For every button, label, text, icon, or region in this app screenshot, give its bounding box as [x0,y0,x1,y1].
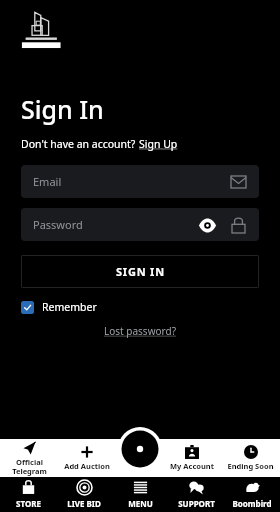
staticText: Sign Up [139,137,178,151]
staticText: SUPPORT [178,498,215,509]
button[interactable]: Official Telegram [0,439,58,477]
staticText: Lost password? [104,324,176,338]
button[interactable]: SUPPORT [168,477,224,512]
staticText: Email [33,174,62,189]
staticText: LIVE BID [67,498,101,509]
button[interactable]: Bettron Live Bid logo [21,8,67,52]
staticText: Don't have an account? [21,137,139,151]
button[interactable]: STORE [0,477,56,512]
button[interactable]: Password locked [227,214,249,236]
staticText: Official Telegram [12,457,47,476]
button[interactable]: My Account [162,439,221,477]
staticText: Remember [42,300,97,314]
staticText: SIGN IN [116,264,165,279]
staticText: Sign In [21,92,104,126]
button[interactable]: MENU [112,477,168,512]
button[interactable]: Ending Soon [221,439,280,477]
button[interactable]: Remember [21,300,97,314]
staticText: STORE [16,498,41,509]
staticText: Boombird [232,498,272,509]
staticText: Add Auction [64,461,110,471]
staticText: Password [33,217,83,232]
button[interactable]: Live auction [118,427,162,471]
button[interactable]: Add Auction [58,439,116,477]
button[interactable]: Password [21,208,259,241]
staticText: My Account [170,461,214,471]
button[interactable]: Sign Up [139,137,178,151]
button[interactable]: SIGN IN [21,255,259,288]
button[interactable]: Lost password? [104,324,176,338]
staticText: MENU [128,498,153,509]
button[interactable]: LIVE BID [56,477,112,512]
button[interactable]: Email [21,165,259,198]
button[interactable]: Show password [195,213,219,237]
button[interactable]: Boombird [224,477,280,512]
staticText: Ending Soon [227,461,274,471]
button[interactable]: Email [227,171,249,193]
